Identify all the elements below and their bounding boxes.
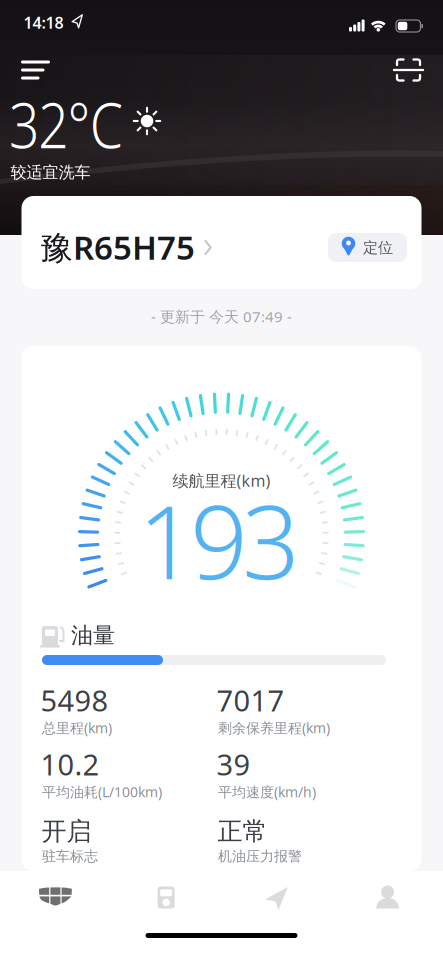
staticText: 机油压力报警 [218, 848, 302, 865]
staticText: 定位 [363, 238, 393, 257]
staticText: 油量 [71, 622, 115, 649]
staticText: 39 [216, 745, 250, 783]
staticText: 正常 [217, 816, 267, 847]
button[interactable]: Scan [386, 52, 430, 88]
staticText: 平均速度(km/h) [218, 782, 316, 801]
staticText: 14:18 [23, 12, 63, 33]
staticText: 5498 [40, 681, 108, 719]
staticText: 豫R65H75 [40, 225, 195, 269]
staticText: 193 [138, 473, 300, 607]
staticText: 较适宜洗车 [10, 162, 90, 182]
staticText: 10.2 [40, 745, 99, 783]
staticText: 驻车标志 [42, 848, 98, 865]
staticText: 剩余保养里程(km) [218, 718, 330, 737]
button[interactable]: 定位 [328, 233, 407, 262]
button[interactable]: 豫R65H75 [40, 225, 220, 269]
staticText: - 更新于 今天 07:49 - [151, 306, 292, 326]
staticText: 平均油耗(L/100km) [42, 782, 162, 801]
staticText: 总里程(km) [42, 718, 112, 737]
button[interactable]: Vehicle [25, 873, 85, 923]
staticText: 续航里程(km) [172, 470, 270, 491]
button[interactable]: Profile [358, 873, 418, 923]
staticText: 32°C [9, 83, 142, 165]
button[interactable]: Menu [12, 52, 56, 88]
staticText: 开启 [41, 816, 91, 847]
button[interactable]: Remote control [136, 873, 196, 923]
staticText: 7017 [216, 681, 284, 719]
button[interactable]: Navigation [247, 873, 307, 923]
